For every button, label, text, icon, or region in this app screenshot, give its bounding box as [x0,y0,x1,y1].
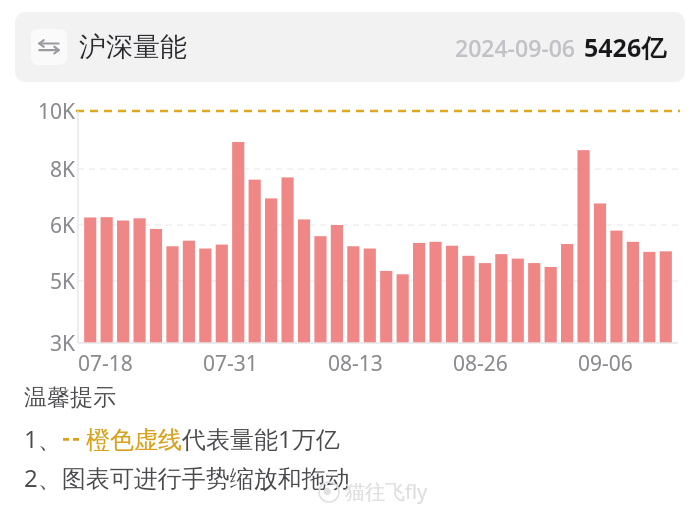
staticText: 温馨提示 [24,383,116,412]
staticText: 6K [50,211,76,239]
staticText: 3K [50,329,76,357]
staticText: 2、图表可进行手势缩放和拖动 [24,461,350,494]
staticText: 橙色虚线代表量能1万亿 [86,422,340,455]
staticText: 08-13 [328,349,383,378]
staticText: 08-26 [453,349,508,378]
button[interactable] [0,0,700,511]
staticText: 猫往飞fly [345,478,428,505]
staticText: 沪深量能 [79,30,187,64]
staticText: 5K [50,267,76,295]
staticText: 09-06 [578,349,633,378]
staticText: 2024-09-06 [455,32,576,63]
staticText: 8K [50,155,76,183]
staticText: 07-31 [203,349,258,378]
staticText: 5426亿 [584,30,667,64]
staticText: 07-18 [78,349,133,378]
button[interactable]: 切换指标 [31,29,67,65]
staticText: 10K [38,97,76,125]
button[interactable]: 切换指标 [15,12,685,82]
staticText: 1、 [24,422,62,455]
